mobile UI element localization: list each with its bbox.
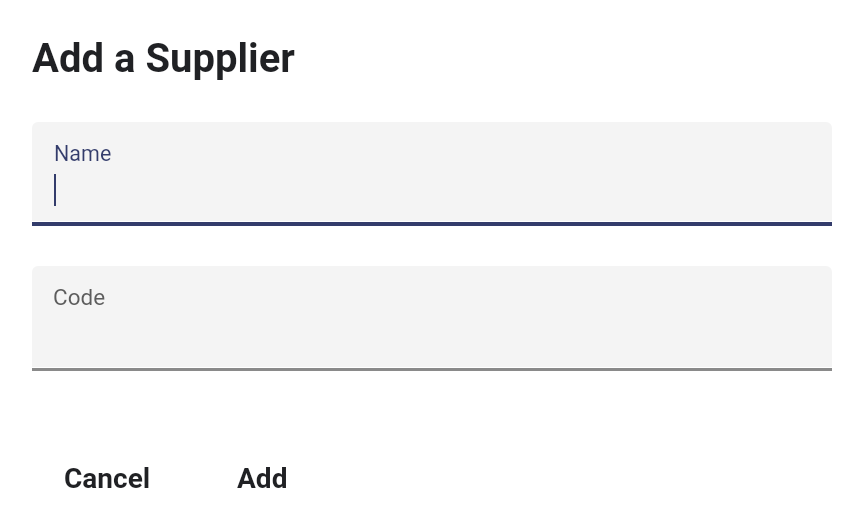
button[interactable]: Cancel (48, 450, 167, 507)
staticText: Add (237, 462, 288, 495)
staticText: Code (53, 284, 106, 310)
staticText: Cancel (64, 462, 151, 495)
button[interactable]: Add (221, 450, 304, 507)
button[interactable]: Code text field (32, 266, 832, 371)
button[interactable]: Name text field (32, 122, 832, 226)
staticText: Add a Supplier (32, 35, 295, 82)
staticText: Name (54, 141, 112, 166)
